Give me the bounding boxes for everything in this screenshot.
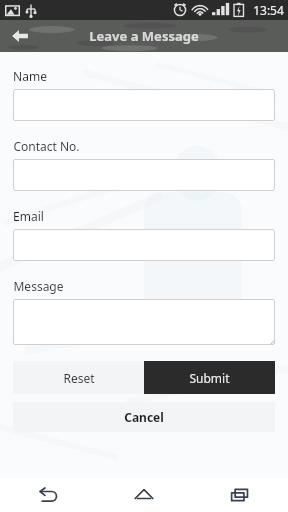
staticText: Message (13, 278, 64, 294)
button[interactable]: Reset (13, 361, 144, 394)
button[interactable]: Back (0, 478, 96, 512)
button[interactable]: Recent apps (192, 478, 288, 512)
button[interactable]: Submit (144, 361, 275, 394)
button[interactable]: Cancel (13, 402, 275, 432)
staticText: Contact No. (13, 138, 80, 154)
staticText: Email (13, 208, 44, 224)
staticText: Leave a Message (89, 27, 199, 45)
staticText: 13:54 (253, 2, 284, 18)
button[interactable] (13, 89, 275, 121)
staticText: Submit (189, 370, 230, 386)
button[interactable]: Home (96, 478, 192, 512)
button[interactable] (13, 159, 275, 191)
staticText: Reset (63, 370, 95, 386)
button[interactable] (13, 229, 275, 261)
staticText: Cancel (124, 409, 164, 425)
staticText: Name (13, 68, 47, 84)
button[interactable] (13, 299, 275, 345)
button[interactable]: Back (0, 20, 40, 52)
